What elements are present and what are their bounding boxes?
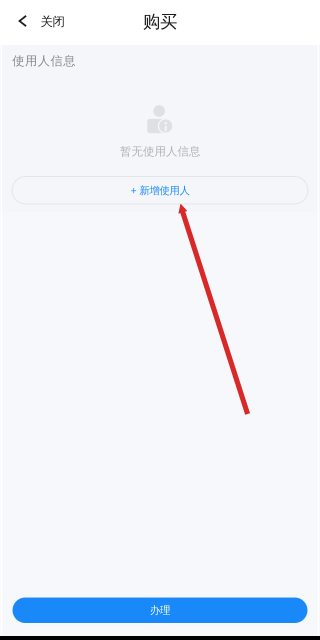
button[interactable]: + 新增使用人 <box>12 176 308 204</box>
button[interactable]: 办理 <box>12 597 307 623</box>
staticText: 办理 <box>150 604 170 617</box>
staticText: + 新增使用人 <box>130 183 189 197</box>
staticText: 关闭 <box>40 14 64 29</box>
staticText: 使用人信息 <box>12 53 75 69</box>
staticText: 购买 <box>143 11 177 32</box>
staticText: 暂无使用人信息 <box>120 144 200 159</box>
button[interactable]: 关闭 <box>0 0 76 44</box>
